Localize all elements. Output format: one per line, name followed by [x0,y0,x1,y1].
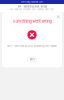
staticText: We could not complete your request right… [10,8,54,11]
button[interactable]: Retry [28,57,36,62]
staticText: something.example.com [21,1,43,3]
staticText: Something went wrong [12,19,51,24]
staticText: Sorry, there was an error processing you… [7,45,57,47]
staticText: Retry [29,58,34,61]
staticText: 404 · Something went wrong [17,5,46,8]
button[interactable]: Close [56,14,61,19]
